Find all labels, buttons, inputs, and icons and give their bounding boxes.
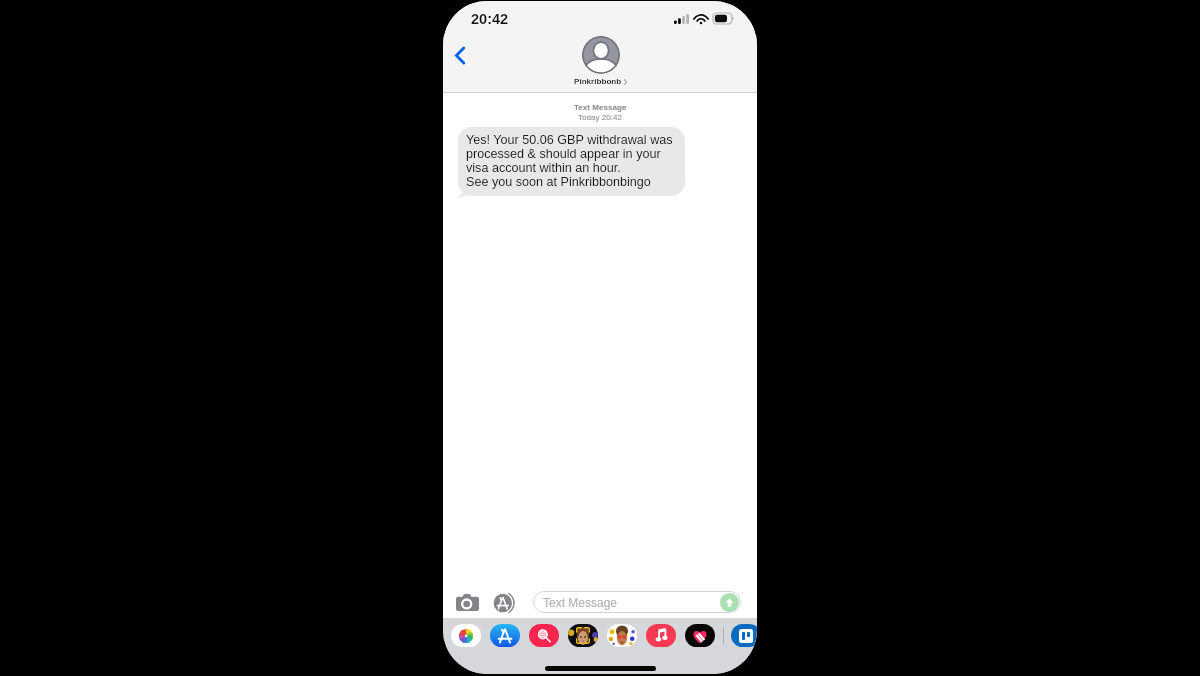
button[interactable]: Fitness	[685, 624, 715, 647]
button[interactable]: Back	[447, 42, 473, 68]
staticText: processed & should appear in your	[466, 147, 661, 161]
button[interactable]: Memoji	[568, 624, 598, 647]
button[interactable]: Photos	[451, 624, 481, 647]
button[interactable]: Apps	[494, 593, 514, 613]
staticText: See you soon at Pinkribbonbingo	[466, 175, 651, 189]
button[interactable]: Pinkribbonb	[574, 36, 627, 86]
staticText: 20:42	[471, 11, 509, 27]
staticText: visa account within an hour.	[466, 161, 621, 175]
button[interactable]: Camera	[456, 594, 479, 611]
button[interactable]: Music	[646, 624, 676, 647]
button[interactable]: Text Message	[533, 591, 741, 613]
staticText: Pinkribbonb	[574, 77, 622, 86]
button[interactable]: Send	[720, 593, 739, 612]
button[interactable]: Images	[529, 624, 559, 647]
staticText: Text Message	[574, 103, 627, 112]
staticText: Yes! Your 50.06 GBP withdrawal was	[466, 133, 673, 147]
button[interactable]: Memoji	[607, 624, 637, 647]
staticText: Text Message	[543, 596, 618, 609]
button[interactable]: App Store	[490, 624, 520, 647]
button[interactable]: Trello	[731, 624, 757, 647]
staticText: Today 20:42	[578, 113, 623, 122]
